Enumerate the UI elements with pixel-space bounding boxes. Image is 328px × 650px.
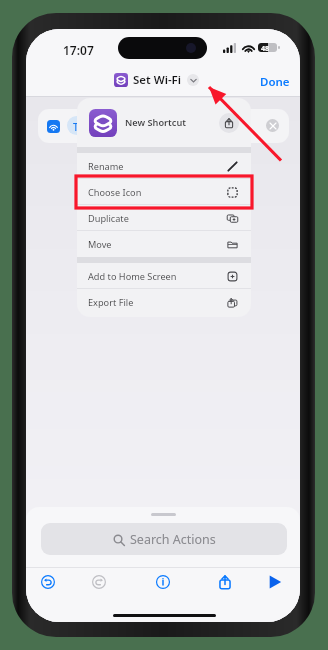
- button[interactable]: Duplicate: [77, 205, 251, 231]
- button[interactable]: New Shortcut: [77, 98, 251, 147]
- staticText: Turn: [73, 120, 95, 134]
- staticText: Move: [88, 238, 112, 251]
- staticText: Search Actions: [130, 531, 216, 548]
- button[interactable]: Add to Home Screen: [77, 263, 251, 289]
- button[interactable]: Rename: [77, 153, 251, 179]
- button[interactable]: Done: [260, 74, 290, 90]
- button[interactable]: Share: [219, 113, 239, 133]
- button[interactable]: Export File: [77, 289, 251, 315]
- button[interactable]: Turn: [38, 109, 289, 143]
- button[interactable]: Redo: [88, 571, 110, 593]
- button[interactable]: Set Wi-Fi: [114, 71, 199, 88]
- staticText: Set Wi-Fi: [133, 72, 182, 88]
- staticText: 48: [261, 43, 270, 52]
- staticText: Choose Icon: [88, 186, 142, 199]
- staticText: Add to Home Screen: [88, 270, 177, 283]
- staticText: New Shortcut: [125, 116, 186, 129]
- button[interactable]: Share: [214, 571, 236, 593]
- staticText: 17:07: [63, 42, 94, 58]
- button[interactable]: Run: [264, 571, 286, 593]
- button[interactable]: Close: [266, 119, 279, 132]
- button[interactable]: Info: [152, 571, 174, 593]
- button[interactable]: Search Actions: [41, 523, 287, 555]
- staticText: Duplicate: [88, 212, 129, 225]
- button[interactable]: Choose Icon: [77, 179, 251, 205]
- button[interactable]: Undo: [37, 571, 59, 593]
- button[interactable]: Move: [77, 231, 251, 257]
- staticText: Done: [260, 74, 290, 90]
- staticText: Export File: [88, 296, 134, 309]
- staticText: Rename: [88, 160, 124, 173]
